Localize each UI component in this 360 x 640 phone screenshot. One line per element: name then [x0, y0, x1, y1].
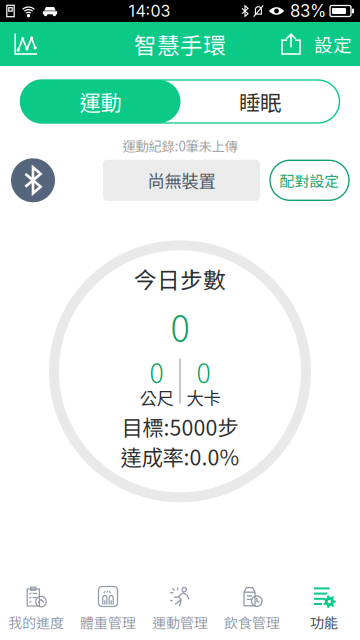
staticText: 83%: [290, 1, 326, 21]
staticText: 運動管理: [152, 612, 208, 632]
staticText: 我的進度: [8, 612, 64, 632]
button[interactable]: 尚無裝置: [103, 160, 260, 201]
staticText: 功能: [310, 612, 338, 632]
staticText: 智慧手環: [134, 28, 226, 60]
staticText: 大卡: [186, 385, 220, 410]
staticText: 目標:5000步: [121, 411, 238, 442]
staticText: 睡眠: [239, 86, 281, 117]
button[interactable]: 功能: [288, 580, 360, 640]
staticText: 配對設定: [279, 170, 339, 191]
button[interactable]: 睡眠: [180, 80, 339, 123]
button[interactable]: 運動: [20, 80, 180, 123]
button[interactable]: 我的進度: [0, 580, 72, 640]
button[interactable]: 設定: [310, 22, 356, 66]
button[interactable]: 運動管理: [144, 580, 216, 640]
staticText: 達成率:0.0%: [120, 441, 239, 472]
staticText: 體重管理: [80, 612, 136, 632]
button[interactable]: Bluetooth: [11, 158, 55, 202]
button[interactable]: 體重管理: [72, 580, 144, 640]
button[interactable]: Charts: [4, 22, 48, 66]
staticText: 設定: [314, 30, 352, 57]
staticText: 運動: [79, 86, 121, 117]
staticText: 尚無裝置: [147, 168, 215, 193]
staticText: 0: [170, 300, 189, 352]
staticText: 14:03: [128, 1, 170, 21]
staticText: 0: [196, 352, 210, 391]
staticText: 公尺: [139, 385, 173, 410]
staticText: 飲食管理: [224, 612, 280, 632]
staticText: 運動紀錄:0筆未上傳: [122, 136, 237, 155]
button[interactable]: Share: [272, 22, 310, 66]
button[interactable]: 配對設定: [270, 160, 349, 200]
staticText: 0: [149, 352, 163, 391]
staticText: 今日步數: [134, 262, 226, 295]
button[interactable]: 飲食管理: [216, 580, 288, 640]
